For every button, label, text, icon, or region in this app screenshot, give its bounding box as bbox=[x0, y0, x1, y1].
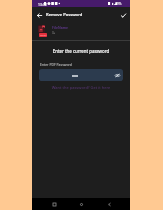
button[interactable]: Recent apps bbox=[48, 198, 60, 210]
button[interactable]: Navigate up bbox=[33, 8, 45, 23]
button[interactable]: Show password bbox=[39, 69, 123, 81]
staticText: 29% bbox=[115, 2, 122, 6]
button[interactable]: Install bbox=[32, 22, 130, 40]
staticText: Remove Password bbox=[46, 12, 83, 18]
staticText: Install bbox=[40, 34, 47, 37]
staticText: 13:32 bbox=[38, 2, 47, 7]
button[interactable]: Want the password? Get it here bbox=[32, 85, 130, 90]
button[interactable]: Show password bbox=[114, 72, 120, 78]
staticText: FileName bbox=[52, 25, 69, 30]
button[interactable]: Back bbox=[103, 198, 115, 210]
button[interactable]: Install bbox=[39, 33, 47, 37]
button[interactable]: Done bbox=[117, 8, 130, 23]
staticText: 3+ bbox=[52, 31, 56, 35]
button[interactable]: Home bbox=[75, 198, 87, 210]
staticText: Enter the current password bbox=[32, 48, 130, 54]
staticText: Enter PDF Password bbox=[40, 62, 72, 67]
